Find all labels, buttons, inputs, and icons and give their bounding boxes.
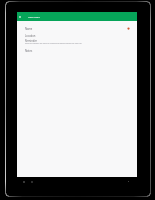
staticText: Name: [25, 27, 32, 30]
staticText: Reminder: [25, 39, 37, 42]
staticText: Does not repeat. Tap here to change the …: [25, 42, 82, 44]
staticText: Notes: [25, 49, 32, 52]
button[interactable]: Notes: [25, 49, 54, 63]
button[interactable]: Account: [127, 27, 130, 30]
staticText: New event: [28, 15, 40, 18]
staticText: Location: [25, 34, 35, 37]
button[interactable]: Close: [17, 12, 23, 21]
button[interactable]: Location: [25, 34, 67, 48]
button[interactable]: Reminder: [25, 39, 73, 53]
button[interactable]: Does not repeat. Tap here to change the …: [25, 42, 145, 52]
button[interactable]: Name: [25, 27, 55, 41]
